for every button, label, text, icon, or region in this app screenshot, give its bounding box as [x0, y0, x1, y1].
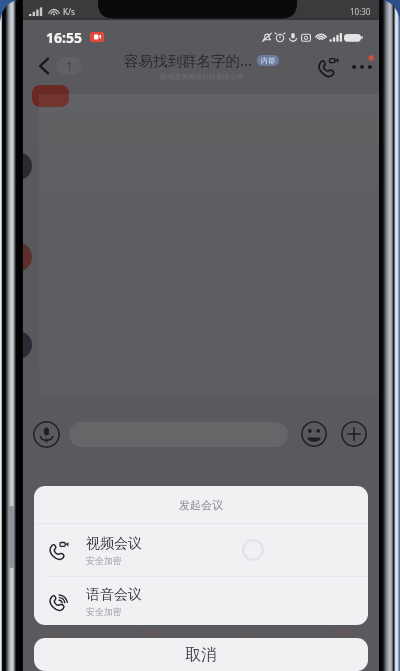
staticText: 容易找到群名字的...: [124, 50, 252, 70]
staticText: 钉盘: [238, 627, 254, 637]
button[interactable]: Back: [23, 51, 90, 81]
button[interactable]: Emoji: [301, 421, 327, 447]
button[interactable]: Video call: [311, 49, 345, 83]
button[interactable]: 语音会议: [34, 577, 368, 625]
button[interactable]: More options: [345, 49, 379, 83]
button[interactable]: 视频会议: [34, 524, 368, 576]
staticText: 安全加密: [86, 606, 122, 617]
button[interactable]: Voice message: [33, 421, 60, 448]
staticText: 语音会议: [86, 586, 142, 604]
button[interactable]: Add: [341, 421, 367, 447]
button[interactable]: 取消: [34, 638, 368, 671]
staticText: 1: [66, 58, 73, 74]
staticText: 安全加密: [86, 555, 122, 566]
staticText: 视频会议: [86, 535, 142, 553]
staticText: 内部: [261, 56, 275, 65]
staticText: 取消: [185, 645, 217, 665]
staticText: 静海国美网络科技有限公司: [160, 72, 244, 81]
staticText: 群收款: [138, 627, 162, 637]
staticText: 发起会议: [179, 498, 223, 512]
staticText: 10:30: [350, 6, 371, 17]
staticText: 群直播: [329, 627, 353, 637]
staticText: K/s: [63, 6, 75, 17]
staticText: 红包: [47, 627, 63, 637]
staticText: 16:55: [46, 28, 82, 47]
